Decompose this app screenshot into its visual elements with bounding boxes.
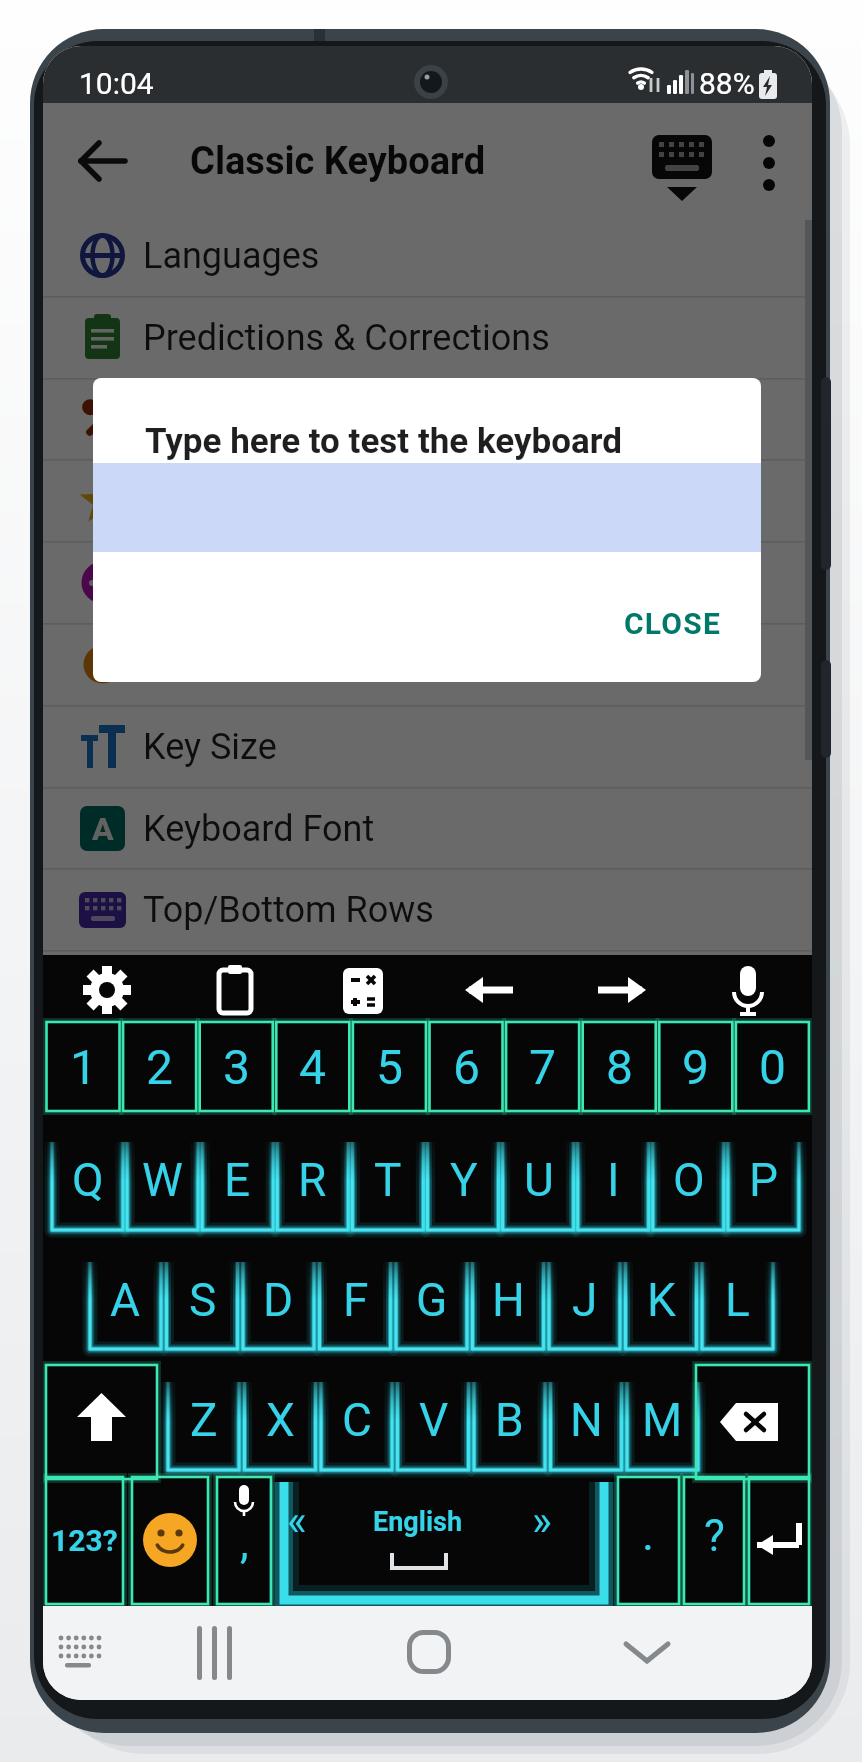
button[interactable]: 2 <box>123 1027 196 1107</box>
button[interactable]: O <box>653 1142 724 1218</box>
staticText: A <box>92 810 114 848</box>
button[interactable]: I <box>578 1142 649 1218</box>
staticText: « <box>287 1496 307 1545</box>
button[interactable]: U <box>503 1142 574 1218</box>
button[interactable]: G <box>396 1262 467 1338</box>
button[interactable]: B <box>474 1382 545 1458</box>
button[interactable]: E <box>202 1142 273 1218</box>
staticText: L <box>725 1273 750 1327</box>
staticText: P <box>749 1153 779 1207</box>
button[interactable]: X <box>245 1382 316 1458</box>
button[interactable]: English <box>348 1504 488 1540</box>
button[interactable]: R <box>277 1142 348 1218</box>
staticText: M <box>642 1393 683 1447</box>
button[interactable]: Keyboard Font <box>43 787 812 869</box>
button[interactable]: Sound & Vibration <box>43 378 812 460</box>
button[interactable]: J <box>549 1262 620 1338</box>
button[interactable]: Y <box>428 1142 499 1218</box>
button[interactable] <box>57 1630 103 1676</box>
staticText: R <box>298 1153 327 1207</box>
staticText: Classic Keyboard <box>190 139 486 184</box>
button[interactable]: Top/Bottom Rows <box>43 868 812 950</box>
button[interactable]: T <box>352 1142 423 1218</box>
staticText: U <box>524 1153 554 1207</box>
button[interactable]: W <box>127 1142 198 1218</box>
staticText: 6 <box>453 1039 480 1095</box>
staticText: F <box>343 1273 369 1327</box>
staticText: 10:04 <box>79 66 154 101</box>
button[interactable]: C <box>321 1382 392 1458</box>
button[interactable] <box>217 1477 271 1604</box>
button[interactable]: A <box>90 1262 161 1338</box>
button[interactable] <box>461 963 521 1017</box>
button[interactable]: 9 <box>659 1027 732 1107</box>
staticText: Sound & Vibration <box>143 399 430 441</box>
staticText: Y <box>450 1153 478 1207</box>
button[interactable] <box>77 135 129 187</box>
button[interactable]: » <box>514 1495 570 1545</box>
button[interactable] <box>205 963 265 1017</box>
button[interactable]: 7 <box>506 1027 579 1107</box>
button[interactable]: Colors <box>43 623 812 705</box>
button[interactable]: 123? <box>46 1477 123 1604</box>
staticText: J <box>572 1273 598 1327</box>
button[interactable]: , <box>217 1503 271 1583</box>
button[interactable]: 1 <box>47 1027 120 1107</box>
button[interactable] <box>407 1630 451 1674</box>
button[interactable]: 0 <box>736 1027 809 1107</box>
button[interactable] <box>749 1477 809 1604</box>
button[interactable]: Predictions & Corrections <box>43 296 812 378</box>
staticText: Languages <box>143 235 320 277</box>
staticText: CLOSE <box>624 606 721 641</box>
button[interactable] <box>649 131 715 207</box>
button[interactable]: . <box>618 1479 679 1589</box>
button[interactable] <box>46 1365 157 1479</box>
button[interactable]: Themes <box>43 541 812 623</box>
button[interactable] <box>132 1477 208 1604</box>
button[interactable] <box>748 135 790 191</box>
staticText: 7 <box>529 1039 556 1095</box>
button[interactable] <box>77 963 137 1017</box>
button[interactable]: K <box>626 1262 697 1338</box>
button[interactable]: 8 <box>583 1027 656 1107</box>
staticText: Type here to test the keyboard <box>145 421 623 462</box>
button[interactable]: Key Size <box>43 705 812 787</box>
staticText: S <box>189 1273 217 1327</box>
staticText: 0 <box>759 1039 786 1095</box>
button[interactable]: « <box>269 1495 325 1545</box>
button[interactable]: Z <box>168 1382 239 1458</box>
staticText: G <box>416 1273 448 1327</box>
staticText: Key Size <box>143 726 277 768</box>
staticText: A <box>110 1273 141 1327</box>
button[interactable]: Languages <box>43 214 812 296</box>
staticText: 2 <box>146 1039 173 1095</box>
button[interactable] <box>718 963 778 1017</box>
button[interactable]: S <box>167 1262 238 1338</box>
button[interactable]: V <box>398 1382 469 1458</box>
button[interactable]: L <box>702 1262 773 1338</box>
button[interactable]: H <box>473 1262 544 1338</box>
staticText: Z <box>190 1393 218 1447</box>
button[interactable] <box>590 963 650 1017</box>
button[interactable] <box>623 1634 671 1670</box>
button[interactable]: 5 <box>353 1027 426 1107</box>
button[interactable]: ? <box>684 1477 744 1594</box>
button[interactable]: Q <box>52 1142 123 1218</box>
button[interactable]: D <box>243 1262 314 1338</box>
staticText: E <box>224 1153 251 1207</box>
button[interactable]: N <box>551 1382 622 1458</box>
button[interactable]: P <box>728 1142 799 1218</box>
button[interactable]: M <box>627 1382 698 1458</box>
button[interactable]: F <box>320 1262 391 1338</box>
button[interactable] <box>333 963 393 1017</box>
button[interactable] <box>193 1626 239 1680</box>
staticText: X <box>266 1393 295 1447</box>
button[interactable]: 4 <box>276 1027 349 1107</box>
button[interactable]: 6 <box>430 1027 503 1107</box>
button[interactable]: Effects <box>43 459 812 541</box>
button[interactable] <box>696 1365 809 1479</box>
button[interactable]: CLOSE <box>597 598 747 648</box>
button[interactable]: 3 <box>200 1027 273 1107</box>
staticText: 88% <box>699 66 755 101</box>
